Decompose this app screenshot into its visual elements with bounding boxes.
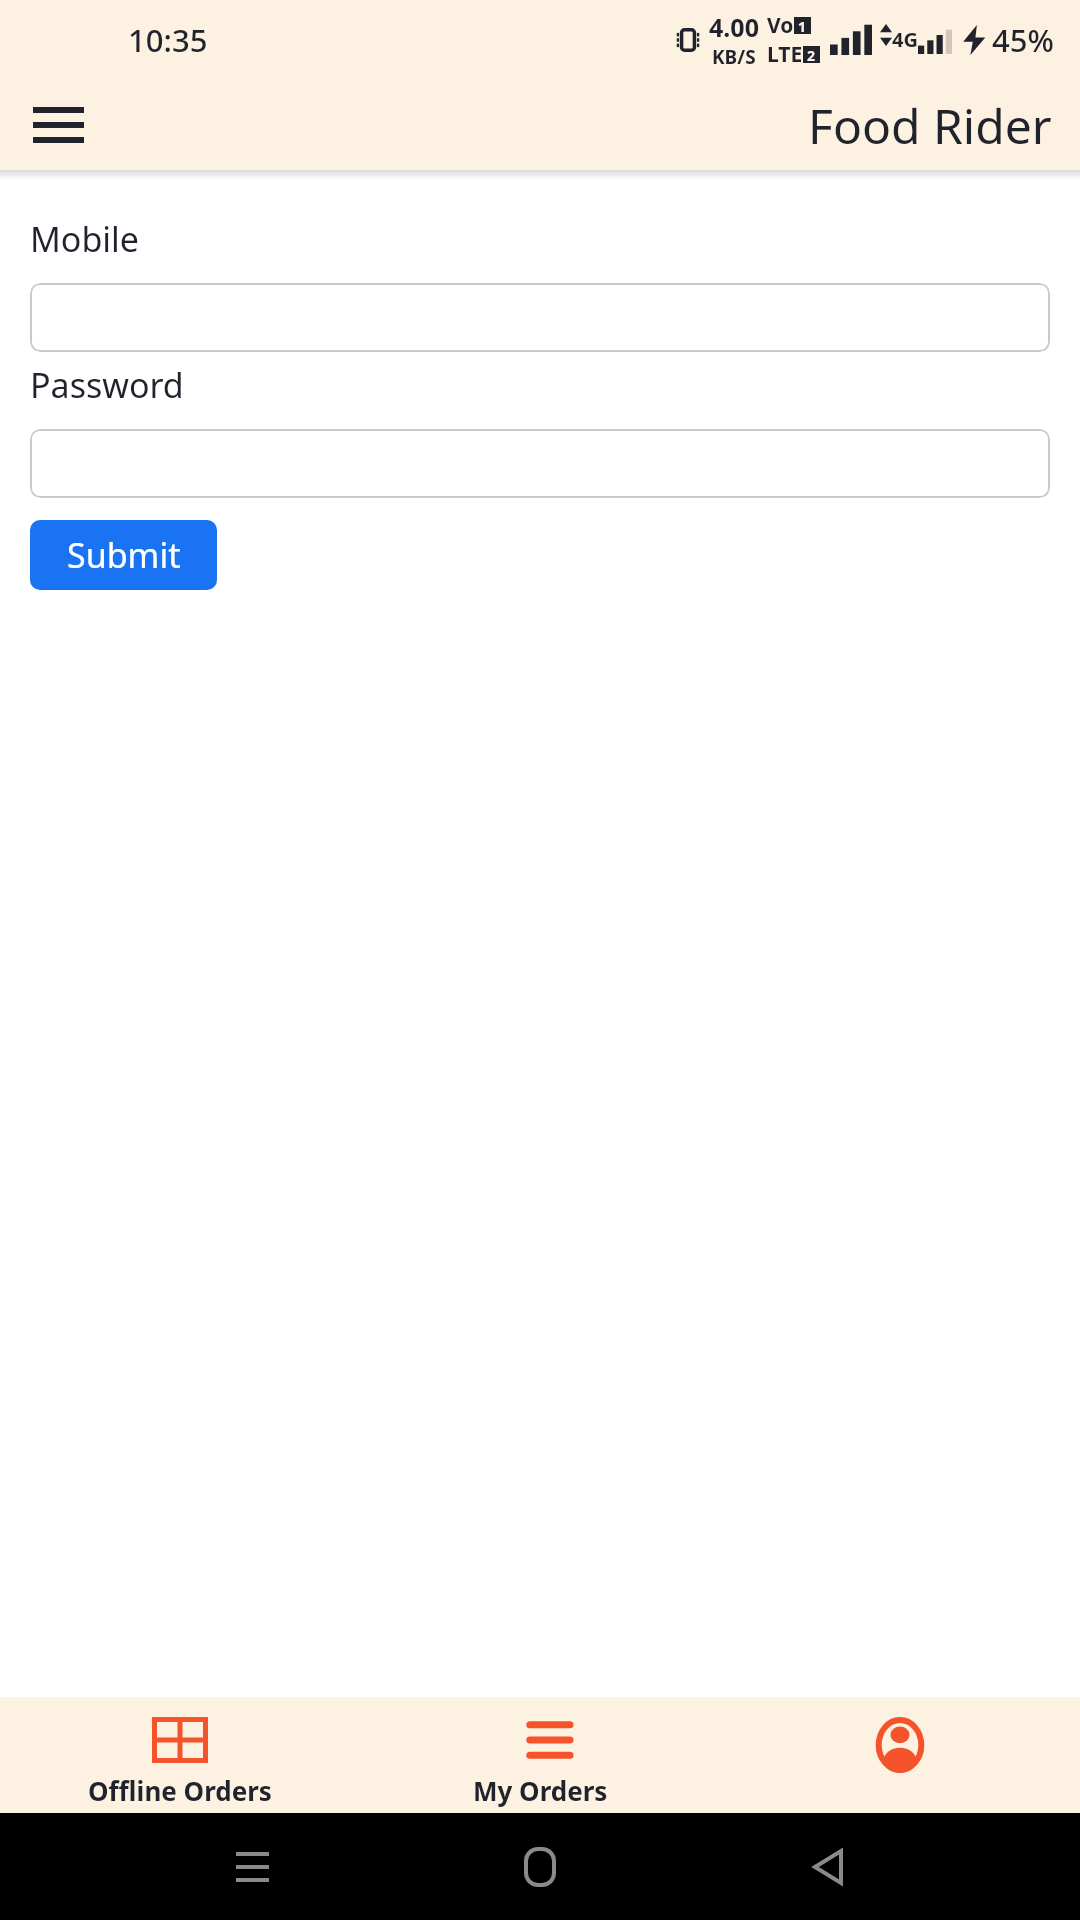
button[interactable]: Profile	[720, 1697, 1080, 1773]
button[interactable]: Back	[798, 1837, 858, 1897]
staticText: Password	[30, 362, 184, 408]
button[interactable]: Offline Orders	[0, 1697, 360, 1808]
staticText: Offline Orders	[88, 1773, 272, 1808]
button[interactable]: Home	[510, 1837, 570, 1897]
staticText: 4G	[892, 26, 918, 53]
staticText: My Orders	[473, 1773, 608, 1808]
button[interactable]	[30, 283, 1050, 352]
button[interactable]: My Orders	[360, 1697, 720, 1808]
button[interactable]: Submit	[30, 520, 217, 590]
staticText: Vo	[767, 11, 794, 40]
staticText: 1	[798, 17, 807, 34]
button[interactable]: Open navigation menu	[26, 93, 90, 157]
staticText: Food Rider	[808, 93, 1052, 158]
staticText: LTE	[767, 40, 803, 69]
staticText: 2	[807, 46, 816, 63]
staticText: Mobile	[30, 216, 140, 262]
button[interactable]	[30, 429, 1050, 498]
staticText: 4.00	[709, 10, 759, 44]
staticText: 10:35	[128, 19, 208, 61]
button[interactable]: Recent apps	[222, 1837, 282, 1897]
staticText: 45%	[992, 19, 1054, 61]
staticText: KB/S	[712, 44, 756, 70]
staticText: Submit	[67, 532, 181, 578]
